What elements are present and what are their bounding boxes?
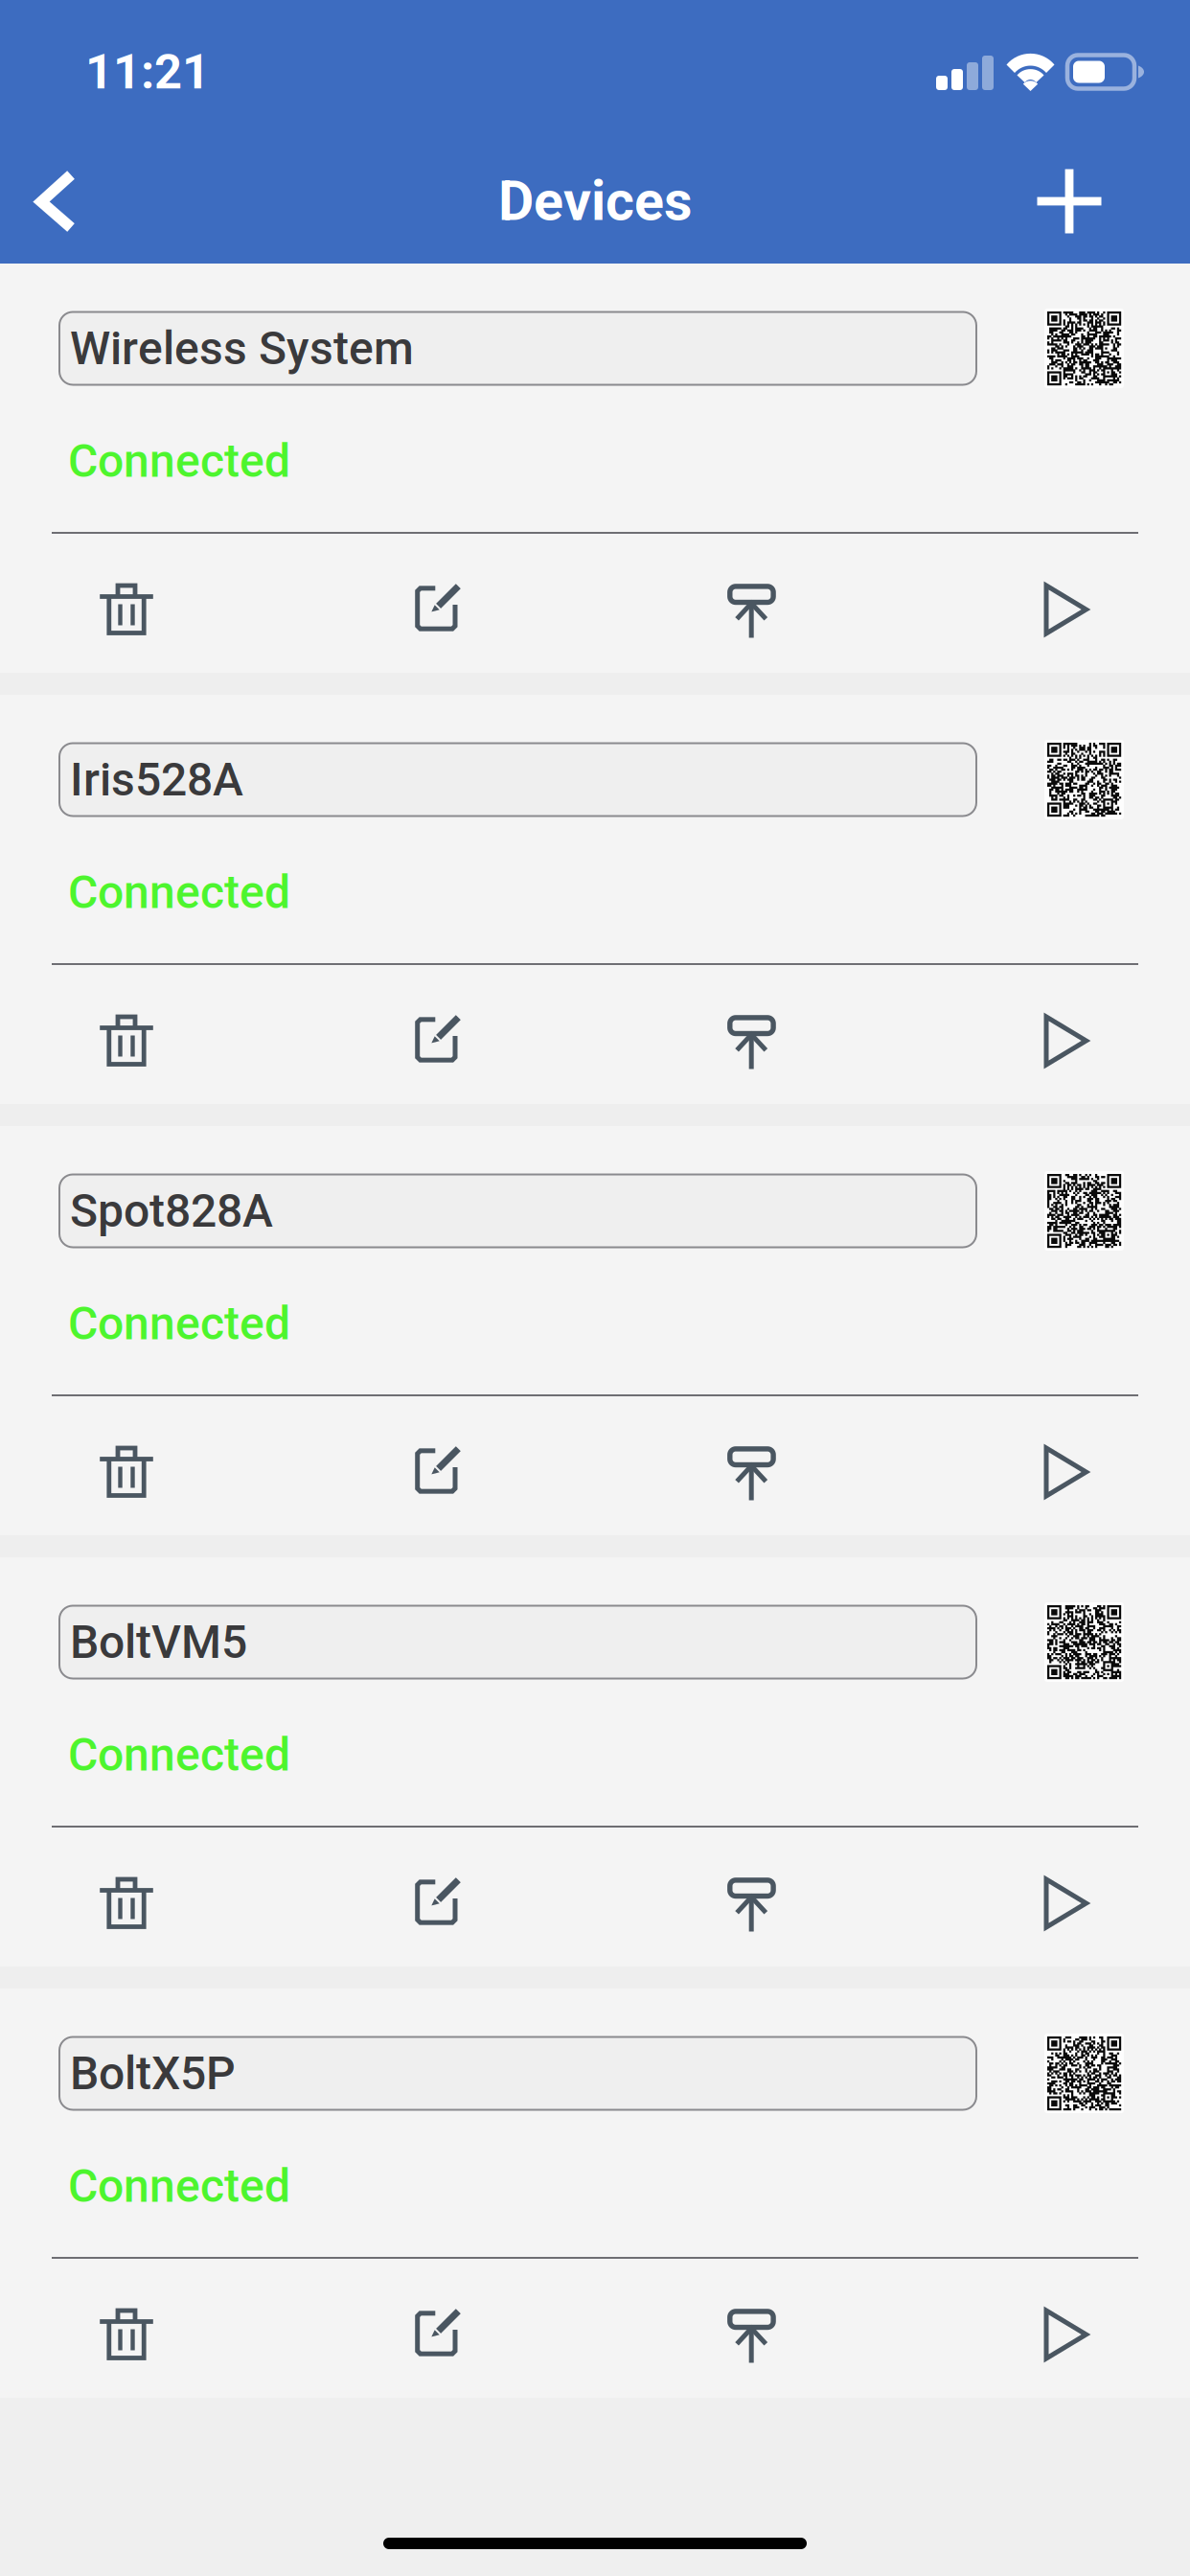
button[interactable]: Delete (54, 999, 199, 1083)
staticText: 11:21 (85, 43, 210, 100)
button[interactable]: Play (994, 567, 1139, 652)
button[interactable]: Upload (680, 1861, 826, 1945)
button[interactable]: Edit (367, 567, 513, 652)
button[interactable]: Add device (998, 150, 1190, 252)
button[interactable]: Edit (367, 2292, 513, 2377)
button[interactable]: Back (0, 150, 115, 253)
button[interactable]: Play (994, 1430, 1139, 1514)
button[interactable]: Delete (54, 1430, 199, 1514)
button[interactable]: Edit (367, 999, 513, 1083)
staticText: BoltVM5 (70, 1615, 247, 1669)
button[interactable]: Upload (680, 1430, 826, 1514)
button[interactable]: Delete (54, 2292, 199, 2377)
staticText: BoltX5P (70, 2046, 236, 2100)
button[interactable]: Play (994, 999, 1139, 1083)
staticText: Connected (68, 1728, 290, 1782)
staticText: Connected (68, 434, 290, 488)
staticText: Connected (68, 1297, 290, 1350)
button[interactable]: Delete (54, 1861, 199, 1945)
staticText: Connected (68, 865, 290, 919)
button[interactable]: Play (994, 1861, 1139, 1945)
button[interactable]: Delete (54, 567, 199, 652)
button[interactable]: Upload (680, 999, 826, 1083)
staticText: Connected (68, 2159, 290, 2213)
staticText: Devices (498, 169, 692, 233)
button[interactable]: Upload (680, 567, 826, 652)
staticText: Iris528A (70, 753, 243, 807)
button[interactable]: Upload (680, 2292, 826, 2377)
button[interactable]: Edit (367, 1861, 513, 1945)
staticText: Spot828A (70, 1184, 273, 1238)
button[interactable]: Edit (367, 1430, 513, 1514)
staticText: Wireless System (70, 321, 414, 375)
button[interactable]: Play (994, 2292, 1139, 2377)
